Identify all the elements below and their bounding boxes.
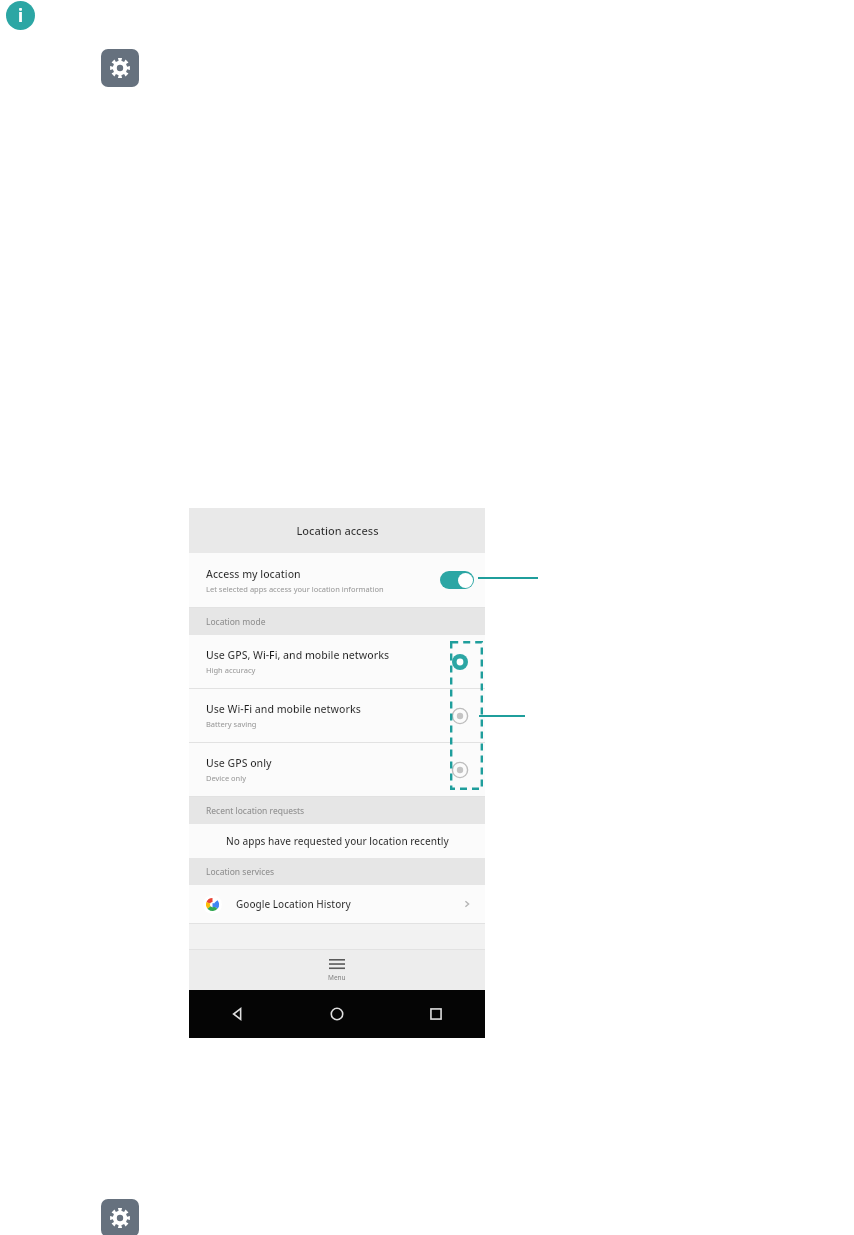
staticText: Access my location: [206, 567, 301, 581]
button[interactable]: Access my location on: [440, 569, 474, 591]
button[interactable]: Menu: [189, 950, 485, 990]
staticText: Let selected apps access your location i…: [206, 584, 384, 594]
button[interactable]: Not selected: [447, 757, 473, 783]
button[interactable]: Home: [326, 1003, 348, 1025]
button[interactable]: Not selected: [447, 703, 473, 729]
button[interactable]: Access my location: [189, 553, 485, 607]
button[interactable]: Settings: [101, 1199, 139, 1235]
button[interactable]: Google Location History: [189, 885, 485, 923]
staticText: Use GPS only: [206, 756, 272, 770]
button[interactable]: Back: [227, 1003, 249, 1025]
staticText: Menu: [328, 973, 346, 982]
staticText: Use GPS, Wi-Fi, and mobile networks: [206, 648, 390, 662]
button[interactable]: Recent apps: [425, 1003, 447, 1025]
staticText: Google Location History: [236, 897, 351, 911]
staticText: Location access: [296, 523, 379, 538]
button[interactable]: Use GPS, Wi-Fi, and mobile networks: [189, 635, 485, 688]
staticText: Location mode: [206, 616, 266, 628]
staticText: No apps have requested your location rec…: [226, 834, 449, 848]
staticText: Recent location requests: [206, 805, 305, 817]
button[interactable]: Information: [6, 1, 35, 30]
button[interactable]: Use Wi-Fi and mobile networks: [189, 689, 485, 742]
staticText: Battery saving: [206, 719, 257, 729]
staticText: Location services: [206, 866, 275, 878]
button[interactable]: Settings: [101, 49, 139, 87]
staticText: Use Wi-Fi and mobile networks: [206, 702, 361, 716]
button[interactable]: Selected: [447, 649, 473, 675]
staticText: High accuracy: [206, 665, 256, 675]
staticText: Device only: [206, 773, 247, 783]
button[interactable]: Use GPS only: [189, 743, 485, 796]
staticText: i: [18, 4, 24, 27]
